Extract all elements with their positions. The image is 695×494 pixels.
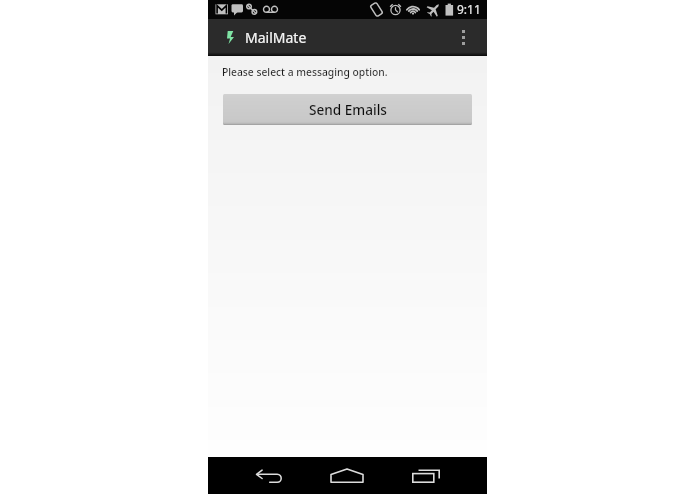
staticText: 9:11 xyxy=(457,1,481,17)
staticText: Send Emails xyxy=(309,100,387,119)
staticText: Please select a messaging option. xyxy=(222,65,388,79)
button[interactable]: More options xyxy=(450,19,476,56)
button[interactable]: Send Emails xyxy=(223,94,472,125)
staticText: MailMate xyxy=(245,28,307,47)
button[interactable]: Home xyxy=(314,457,380,494)
button[interactable]: Back xyxy=(236,457,302,494)
button[interactable]: Recents xyxy=(391,457,457,494)
